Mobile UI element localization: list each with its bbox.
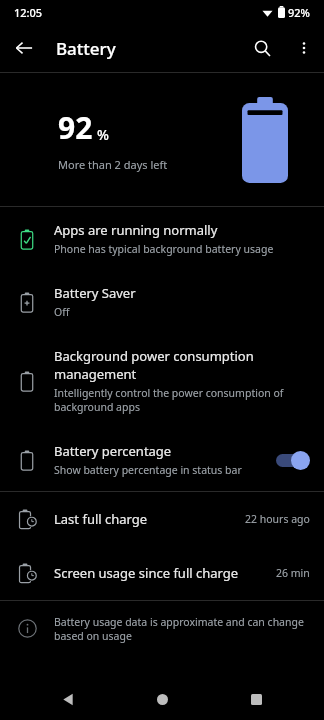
staticText: 12:05 <box>14 5 43 20</box>
staticText: More than 2 days left <box>58 157 168 172</box>
staticText: 92 <box>58 107 93 148</box>
button[interactable]: More options <box>284 28 324 68</box>
staticText: Battery <box>56 37 116 60</box>
staticText: Last full charge <box>54 510 148 528</box>
button[interactable]: Battery percentage <box>0 428 324 491</box>
button[interactable]: Apps are running normally <box>0 207 324 270</box>
button[interactable]: Home <box>148 685 176 713</box>
staticText: Intelligently control the power consumpt… <box>54 386 310 414</box>
button[interactable]: Back <box>54 685 82 713</box>
staticText: Show battery percentage in status bar <box>54 463 242 477</box>
staticText: 92% <box>288 5 310 20</box>
staticText: Battery usage data is approximate and ca… <box>54 615 308 643</box>
staticText: 22 hours ago <box>245 512 310 526</box>
button[interactable]: Search <box>240 26 284 70</box>
staticText: Off <box>54 305 70 319</box>
staticText: Screen usage since full charge <box>54 564 239 582</box>
button[interactable]: Last full charge <box>0 492 324 546</box>
staticText: 26 min <box>276 566 310 580</box>
button[interactable]: Recent apps <box>242 685 270 713</box>
button[interactable]: Screen usage since full charge <box>0 546 324 600</box>
staticText: Battery Saver <box>54 284 136 302</box>
staticText: % <box>97 125 109 144</box>
button[interactable]: Battery percentage toggle, on <box>276 450 310 470</box>
staticText: Phone has typical background battery usa… <box>54 242 274 256</box>
button[interactable]: Background power consumption management <box>0 333 324 428</box>
button[interactable]: Battery Saver <box>0 270 324 333</box>
staticText: Battery percentage <box>54 442 172 460</box>
button[interactable]: Back <box>0 24 48 72</box>
staticText: Apps are running normally <box>54 221 218 239</box>
staticText: Background power consumption management <box>54 347 310 383</box>
